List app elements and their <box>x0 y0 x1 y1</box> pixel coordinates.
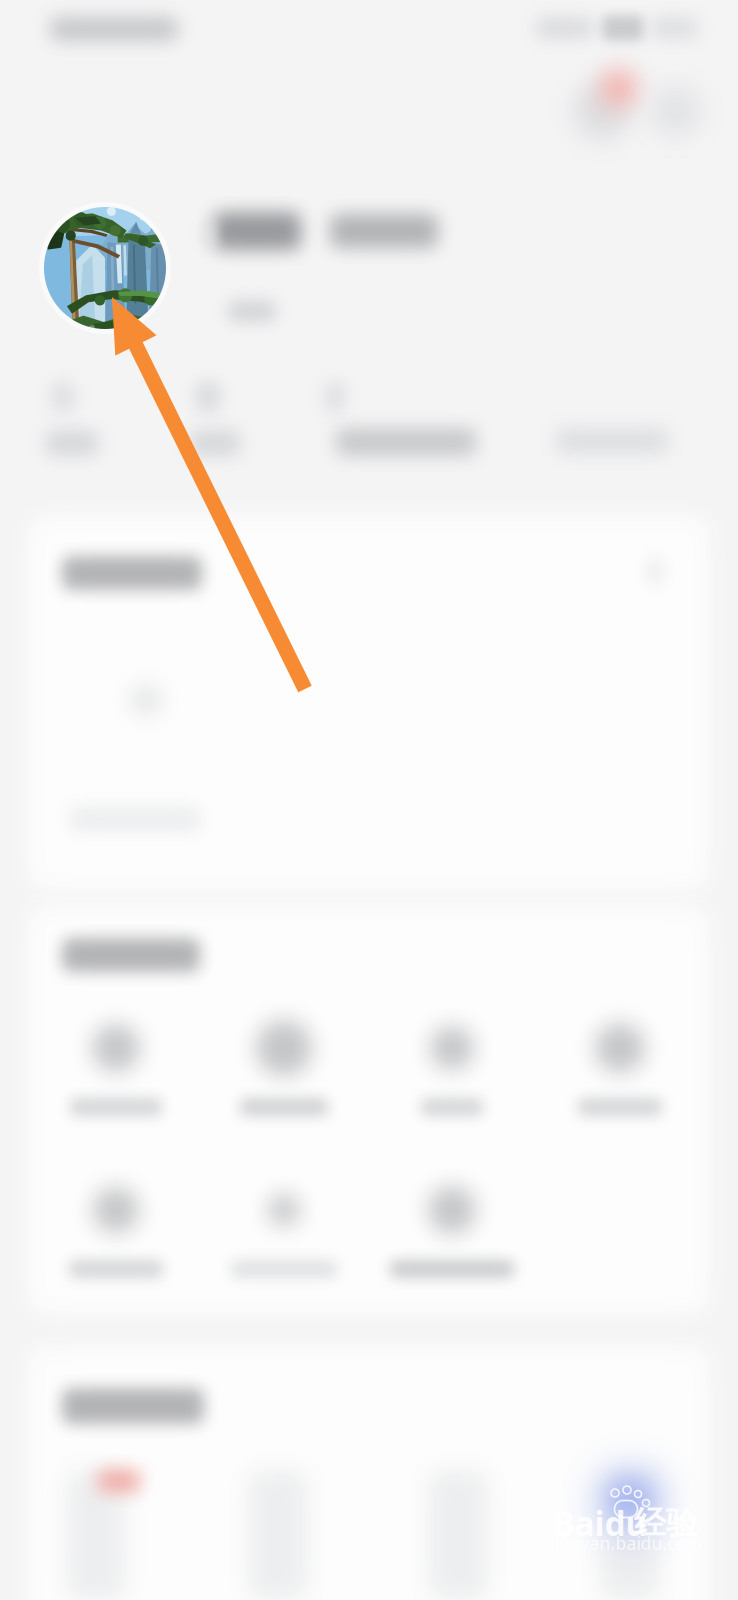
staticText: jingyan.baidu.com <box>550 1531 701 1554</box>
button[interactable]: Tool 2 <box>208 1000 360 1150</box>
button[interactable]: Recommended product 1 <box>40 1450 210 1600</box>
button[interactable]: Tool 5 <box>40 1162 192 1312</box>
button[interactable]: Tool 4 <box>544 1000 696 1150</box>
button[interactable]: Coupons <box>20 372 170 468</box>
button[interactable]: Recommended product 4 <box>550 1450 710 1600</box>
button[interactable]: Profile photo <box>34 197 176 339</box>
button[interactable]: Recommended product 2 <box>210 1450 380 1600</box>
button[interactable]: Account name <box>195 200 525 330</box>
button[interactable]: My orders <box>28 516 710 598</box>
button[interactable]: Recommended product 3 <box>380 1450 550 1600</box>
button[interactable]: Membership <box>525 372 715 468</box>
button[interactable]: Awaiting shipment <box>210 620 380 870</box>
staticText: 经验 <box>634 1503 698 1543</box>
button[interactable]: Messages <box>562 66 650 154</box>
button[interactable]: Awaiting payment <box>40 620 210 870</box>
button[interactable]: Tool 1 <box>40 1000 192 1150</box>
button[interactable]: Tool 6 <box>208 1162 360 1312</box>
button[interactable]: Tool 3 <box>376 1000 528 1150</box>
button[interactable]: Points <box>170 372 320 468</box>
button[interactable]: Balance <box>320 372 520 468</box>
button[interactable]: Settings <box>636 66 718 154</box>
staticText: Baidu <box>552 1501 647 1545</box>
button[interactable]: Tool 7 <box>376 1162 528 1312</box>
